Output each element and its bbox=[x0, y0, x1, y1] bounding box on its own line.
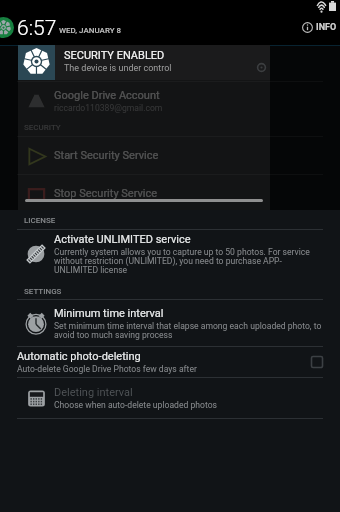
staticText: Auto-delete Google Drive Photos few days… bbox=[17, 364, 197, 374]
staticText: SECURITY bbox=[24, 123, 61, 132]
staticText: WED, JANUARY 8 bbox=[59, 26, 122, 35]
staticText: LICENSE bbox=[24, 216, 56, 225]
staticText: SECURITY ENABLED bbox=[64, 49, 165, 62]
staticText: Activate UNLIMITED service bbox=[54, 233, 191, 246]
button[interactable]: Automatic photo-deleting bbox=[0, 347, 340, 377]
staticText: Stop Security Service bbox=[54, 187, 158, 200]
button[interactable]: INFO bbox=[300, 20, 339, 35]
staticText: Google Drive Account bbox=[54, 89, 160, 102]
staticText: The device is under control bbox=[64, 63, 172, 74]
staticText: 6:57 bbox=[17, 16, 57, 41]
staticText: Minimum time interval bbox=[54, 307, 164, 320]
button[interactable]: Deleting interval bbox=[0, 378, 340, 418]
staticText: SETTINGS bbox=[24, 287, 62, 296]
staticText: Deleting interval bbox=[54, 386, 133, 399]
button[interactable]: Stop Security Service bbox=[0, 175, 340, 212]
staticText: Start Security Service bbox=[54, 149, 159, 162]
button[interactable]: SECURITY ENABLED bbox=[18, 43, 270, 80]
staticText: Choose when auto-delete uploaded photos bbox=[54, 400, 217, 410]
button[interactable]: Notification settings bbox=[257, 63, 266, 72]
staticText: Currently system allows you to capture u… bbox=[54, 247, 323, 275]
staticText: Automatic photo-deleting bbox=[17, 350, 141, 363]
staticText: riccardo110389@gmail.com bbox=[54, 103, 163, 113]
button[interactable]: Automatic photo-deleting bbox=[311, 356, 323, 368]
staticText: ACCOUNT bbox=[24, 63, 61, 72]
button[interactable]: Minimum time interval bbox=[0, 300, 340, 346]
button[interactable]: Close notification shade bbox=[25, 199, 263, 202]
button[interactable]: Start Security Service bbox=[0, 137, 340, 174]
staticText: Set minimum time interval that elapse am… bbox=[54, 321, 323, 340]
button[interactable]: Google Drive Account bbox=[0, 81, 340, 120]
staticText: INFO bbox=[316, 22, 337, 33]
button[interactable]: Activate UNLIMITED service bbox=[0, 230, 340, 278]
